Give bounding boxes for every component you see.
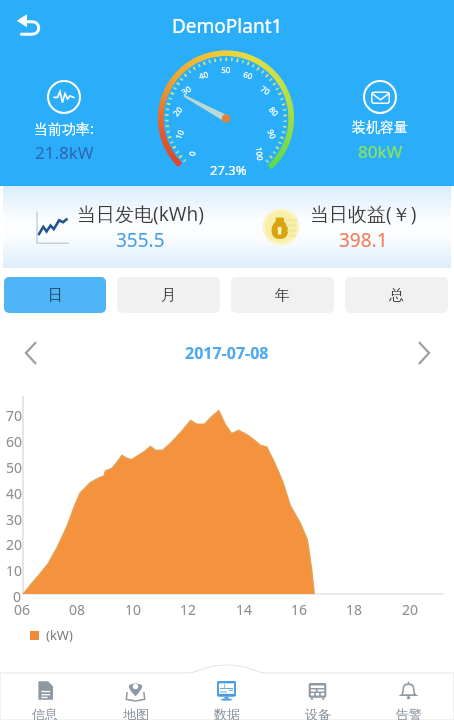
staticText: 18 [346,600,363,619]
button[interactable]: 2017-07-08 [185,342,269,364]
staticText: 10 [125,600,142,619]
staticText: 10 [6,561,23,580]
staticText: 月 [161,286,176,305]
button[interactable]: 地图 [90,660,181,720]
button[interactable]: 年 [231,277,334,313]
staticText: 装机容量 [352,119,408,137]
button[interactable]: 日 [4,277,106,313]
staticText: 398.1 [339,227,388,253]
staticText: 21.8kW [35,141,94,164]
staticText: 地图 [123,706,149,720]
staticText: 当日发电(kWh) [77,201,204,227]
staticText: 60 [6,432,23,451]
staticText: 70 [6,406,23,425]
staticText: (kW) [46,626,73,644]
staticText: 0 [13,587,22,606]
staticText: 50 [6,458,23,477]
button[interactable]: Back [8,6,50,48]
staticText: 20 [402,600,419,619]
staticText: 30 [6,510,23,529]
staticText: 年 [275,286,290,305]
staticText: 当前功率: [34,119,94,138]
button[interactable]: 当日收益(￥) [227,186,451,268]
button[interactable]: Previous day [11,334,49,372]
staticText: DemoPlant1 [172,13,283,39]
staticText: 日 [48,286,63,305]
staticText: 40 [6,484,23,503]
button[interactable]: 信息 [0,660,90,720]
button[interactable]: 当前功率: [24,80,104,164]
staticText: 告警 [396,706,422,720]
button[interactable]: 装机容量 [340,80,420,163]
button[interactable]: 设备 [272,660,363,720]
staticText: 20 [6,535,23,554]
staticText: 总 [389,286,404,305]
staticText: 14 [236,600,253,619]
staticText: 06 [14,600,31,619]
staticText: 355.5 [116,227,165,253]
staticText: 设备 [305,706,331,720]
staticText: 08 [69,600,86,619]
staticText: 数据 [214,706,240,720]
button[interactable]: 总 [345,277,448,313]
button[interactable]: Next day [405,334,443,372]
button[interactable]: 数据 [181,660,272,720]
staticText: 当日收益(￥) [310,201,417,227]
staticText: 信息 [32,706,58,720]
button[interactable]: 当日发电(kWh) [3,186,227,268]
staticText: 27.3% [210,161,247,179]
staticText: 16 [291,600,308,619]
staticText: 12 [180,600,197,619]
button[interactable]: 告警 [363,660,454,720]
staticText: 80kW [358,140,403,163]
button[interactable]: 月 [117,277,220,313]
